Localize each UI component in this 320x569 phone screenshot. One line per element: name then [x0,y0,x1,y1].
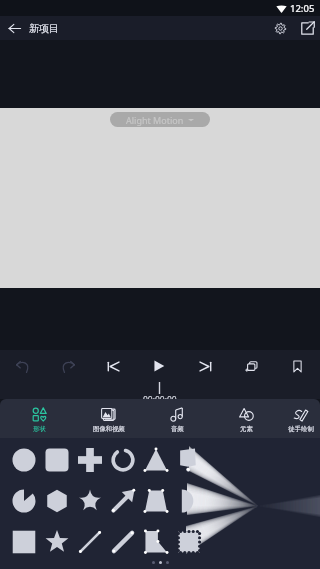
button[interactable]: 音频 [143,399,212,438]
button[interactable]: Bookmark [274,350,320,382]
button[interactable]: 徒手绘制 [281,399,320,438]
staticText: 元素 [240,425,253,433]
button[interactable]: Loop [228,350,274,382]
staticText: 形状 [33,425,46,433]
button[interactable]: Shape [172,480,205,521]
button[interactable]: Redo [45,350,90,382]
staticText: 12:05 [290,2,315,15]
button[interactable]: Shape [40,439,73,480]
staticText: 新项目 [29,22,59,35]
button[interactable]: Shape [7,439,40,480]
button[interactable]: 元素 [212,399,281,438]
button[interactable]: Skip to start [90,350,136,382]
button[interactable]: 图像和视频 [74,399,143,438]
staticText: Alight Motion [126,114,184,126]
button[interactable]: Export [294,16,320,40]
button[interactable]: Shape [139,521,172,562]
button[interactable]: 形状 [5,399,74,438]
button[interactable]: Shape [106,521,139,562]
staticText: 音频 [171,425,184,433]
button[interactable]: Shape [7,480,40,521]
button[interactable]: Shape [73,439,106,480]
button[interactable]: Skip to end [182,350,228,382]
button[interactable]: Shape [172,521,205,562]
button[interactable]: Shape [40,480,73,521]
staticText: 00:00:00 [143,394,177,399]
button[interactable]: Shape [172,439,205,480]
button[interactable]: Back [0,16,29,40]
button[interactable]: Shape [139,480,172,521]
button[interactable]: Shape [7,521,40,562]
button[interactable]: Settings [267,16,294,40]
button[interactable]: Play [136,350,182,382]
button[interactable]: Shape [73,521,106,562]
button[interactable]: Shape [106,480,139,521]
staticText: 图像和视频 [93,425,125,433]
button[interactable]: Alight Motion [110,112,210,127]
button[interactable]: Shape [106,439,139,480]
button[interactable]: Shape [73,480,106,521]
button[interactable]: Shape [139,439,172,480]
staticText: 徒手绘制 [288,425,314,433]
button[interactable]: Undo [0,350,45,382]
button[interactable]: Shape [40,521,73,562]
